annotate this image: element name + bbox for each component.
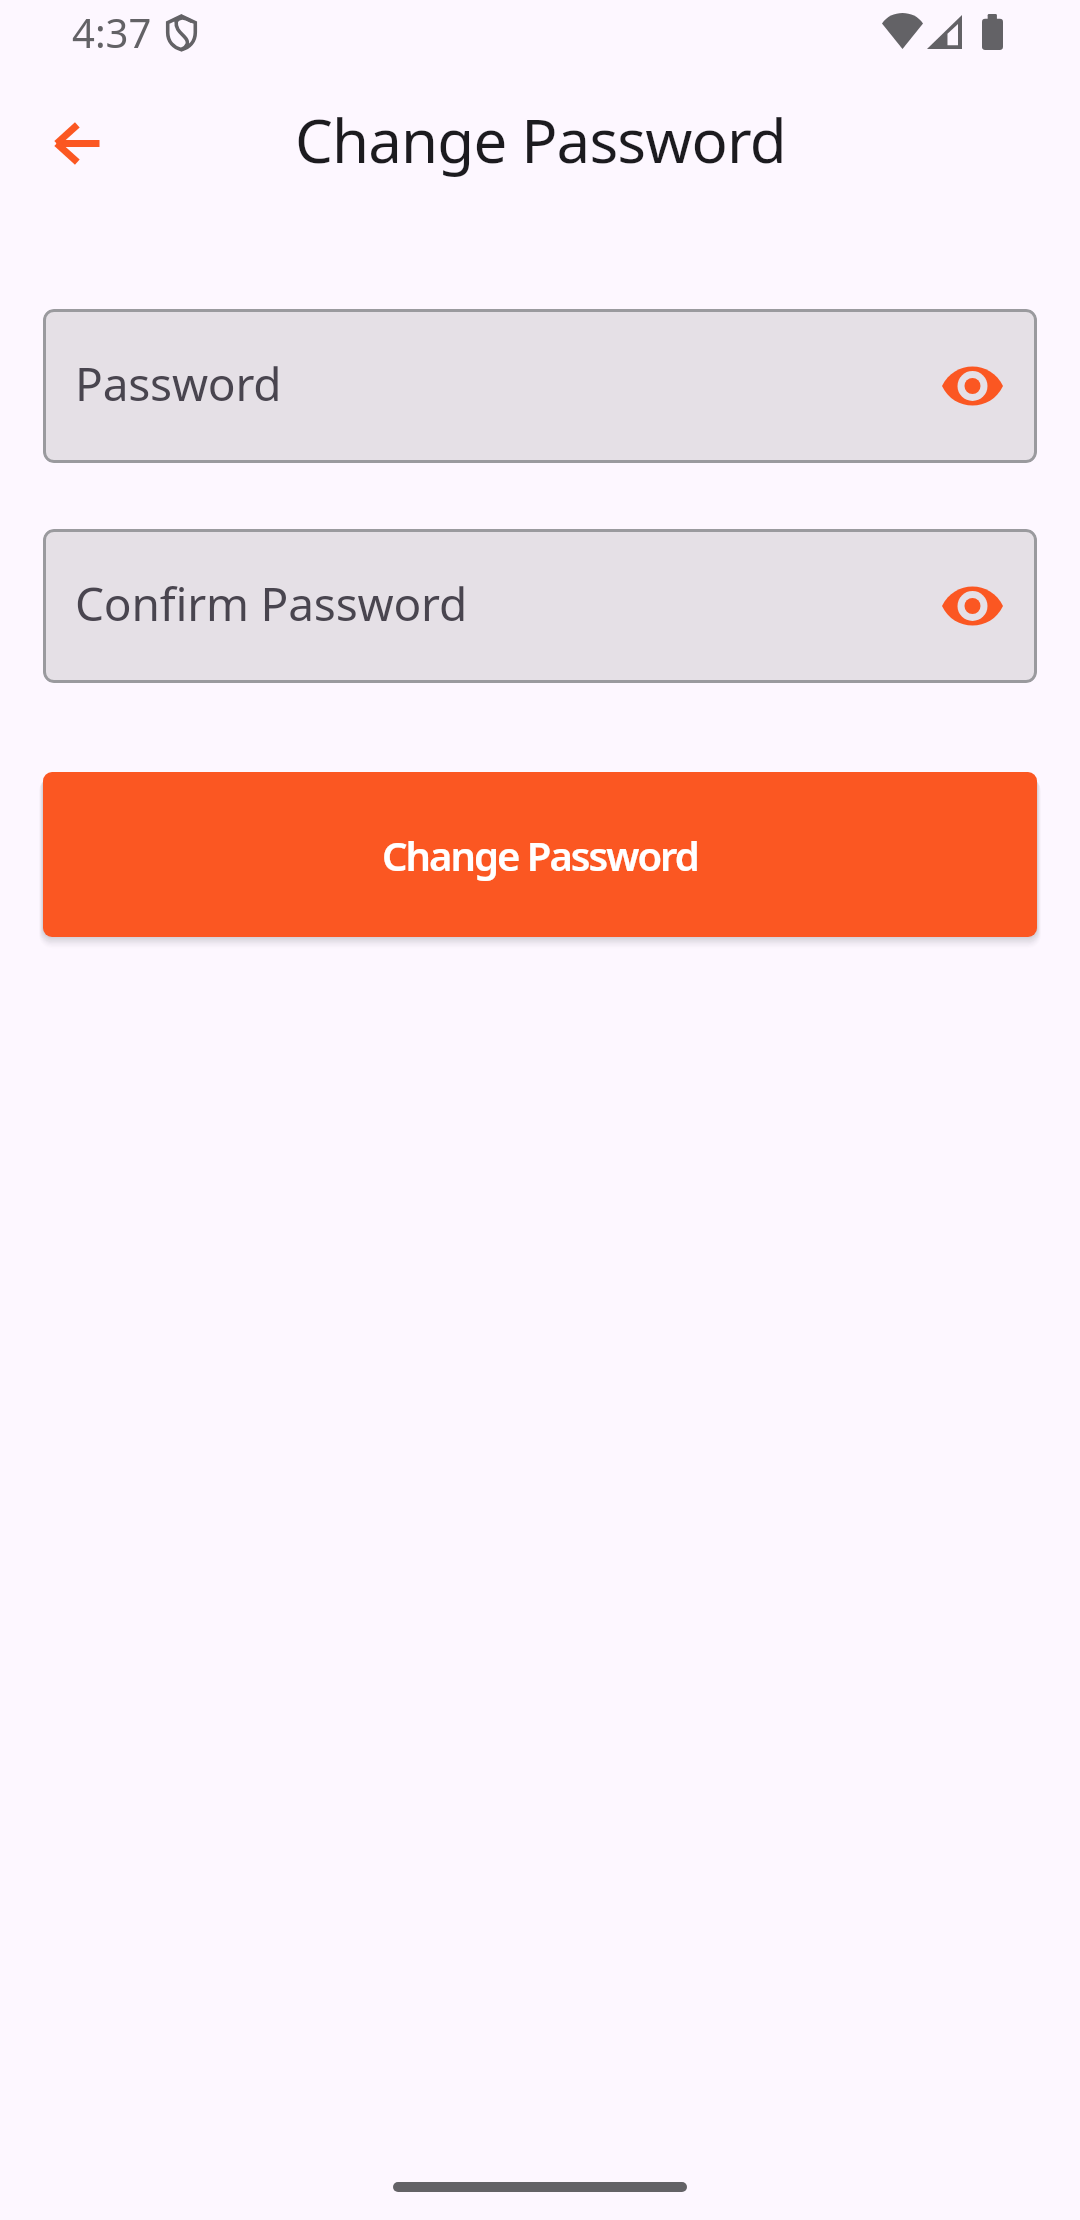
- button[interactable]: Show password: [934, 568, 1010, 644]
- staticText: Change Password: [382, 828, 698, 882]
- staticText: Change Password: [295, 99, 786, 181]
- staticText: Password: [75, 352, 282, 415]
- button[interactable]: Back: [35, 99, 123, 187]
- button[interactable]: Show password: [934, 348, 1010, 424]
- staticText: 4:37: [72, 5, 152, 59]
- button[interactable]: Password: [43, 309, 1037, 463]
- staticText: Confirm Password: [75, 572, 468, 635]
- button[interactable]: Change Password: [43, 772, 1037, 937]
- button[interactable]: Confirm Password: [43, 529, 1037, 683]
